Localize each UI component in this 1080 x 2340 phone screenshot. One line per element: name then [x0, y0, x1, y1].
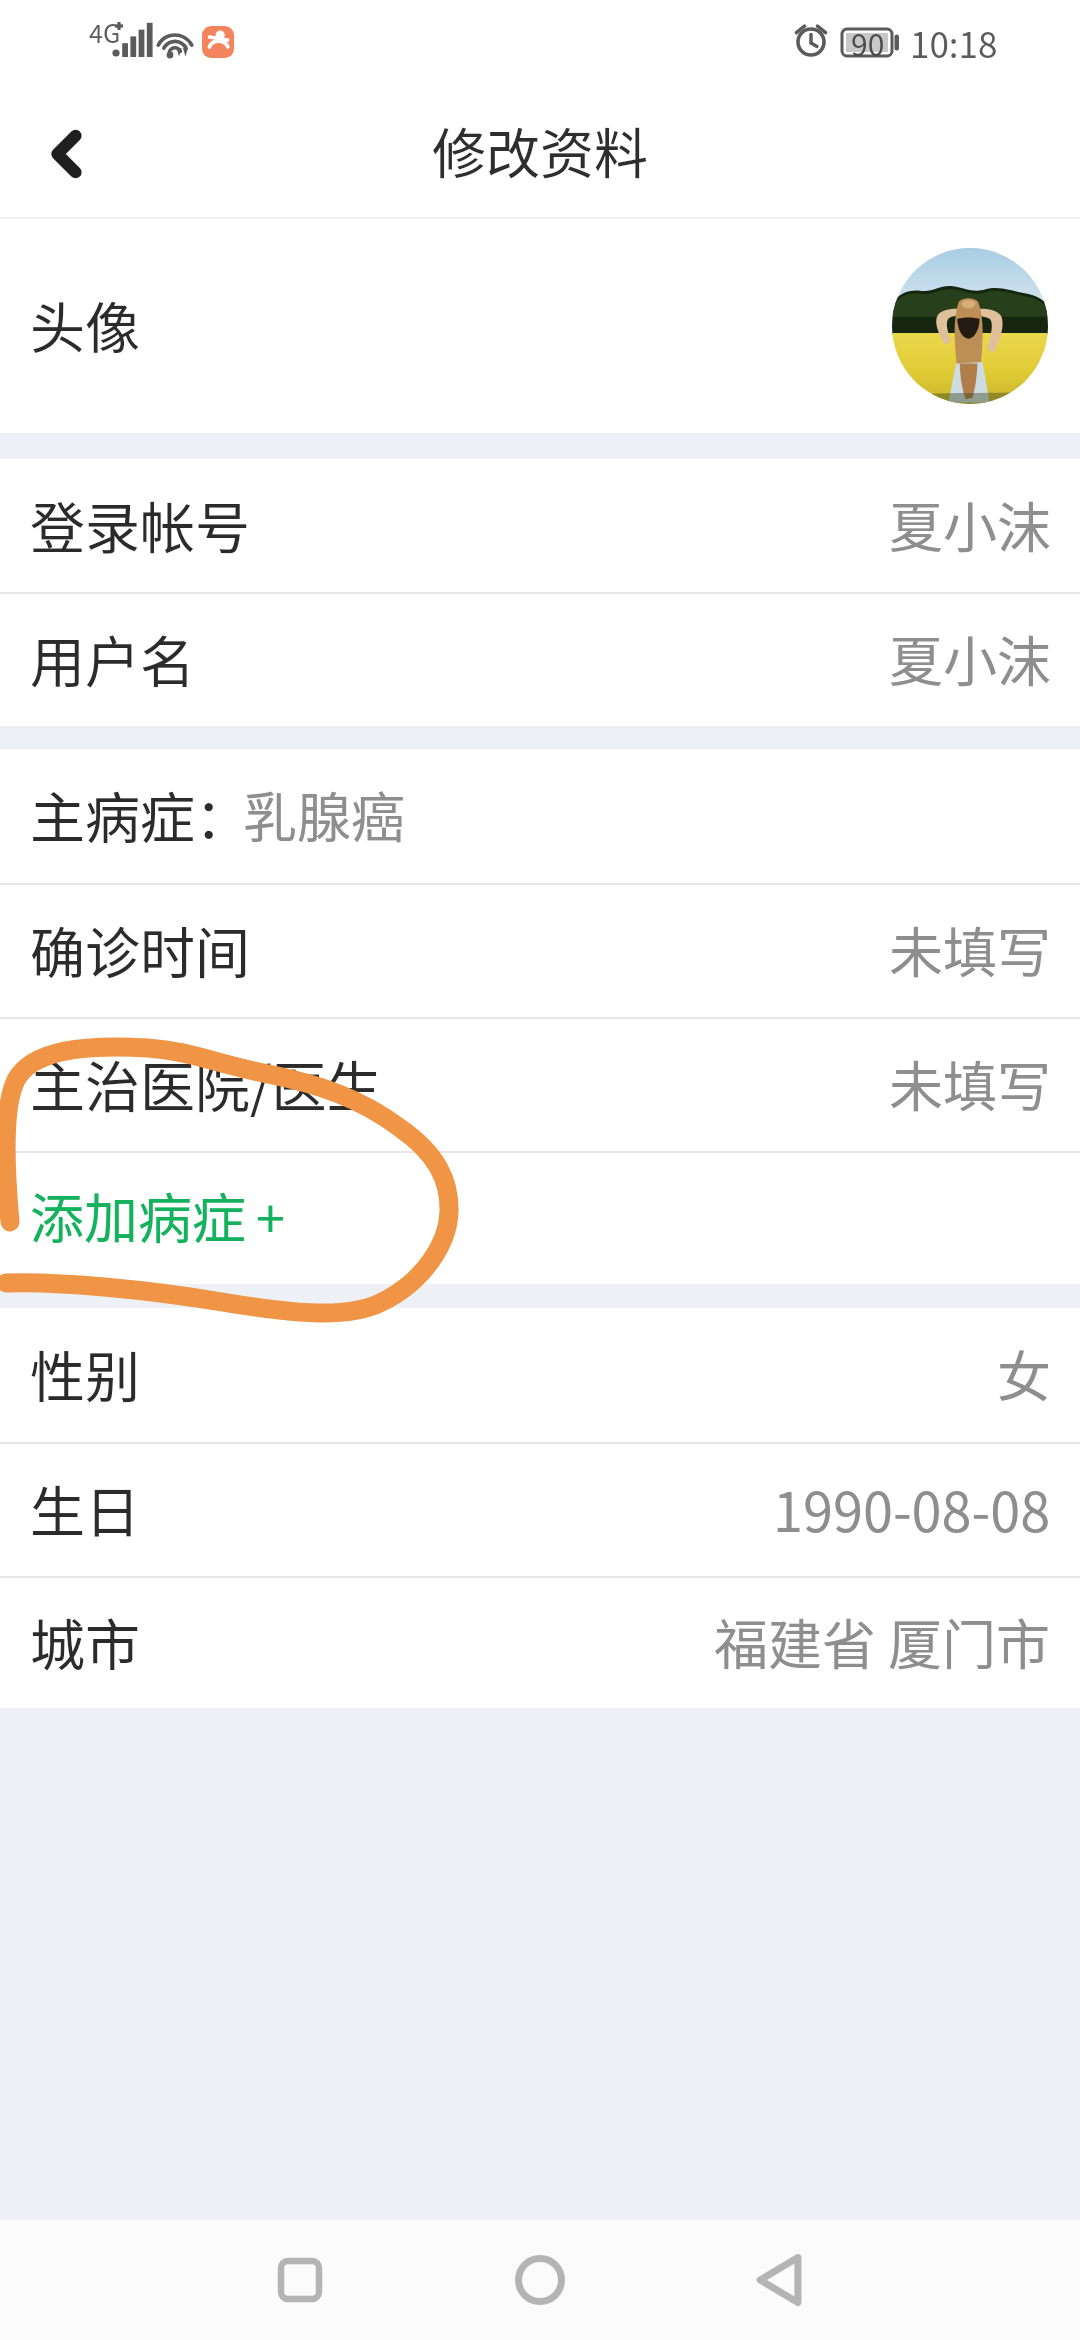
- button[interactable]: Back: [719, 2220, 839, 2340]
- button[interactable]: 主治医院/医生: [0, 1019, 1080, 1151]
- button[interactable]: Recent apps: [240, 2220, 360, 2340]
- staticText: 90: [851, 21, 885, 64]
- staticText: 修改资料: [432, 111, 648, 189]
- button[interactable]: 确诊时间: [0, 885, 1080, 1017]
- staticText: 夏小沫: [889, 485, 1051, 563]
- staticText: 4G: [89, 14, 121, 50]
- staticText: 乳腺癌: [243, 775, 405, 853]
- button[interactable]: 添加病症: [0, 1153, 1080, 1284]
- button[interactable]: 城市: [0, 1578, 1080, 1708]
- staticText: 确诊时间: [30, 909, 251, 989]
- button[interactable]: 登录帐号: [0, 459, 1080, 592]
- staticText: 1990-08-08: [773, 1469, 1051, 1547]
- staticText: 夏小沫: [889, 619, 1051, 697]
- button[interactable]: 生日: [0, 1444, 1080, 1576]
- button[interactable]: 用户名: [0, 594, 1080, 726]
- button[interactable]: 主病症：: [0, 749, 1080, 883]
- button[interactable]: 性别: [0, 1308, 1080, 1442]
- staticText: 10:18: [910, 17, 998, 68]
- staticText: 福建省 厦门市: [714, 1602, 1051, 1680]
- button[interactable]: Back: [0, 90, 130, 217]
- button[interactable]: Home: [480, 2220, 600, 2340]
- staticText: 添加病症: [30, 1176, 246, 1254]
- staticText: 登录帐号: [30, 484, 251, 564]
- staticText: 头像: [30, 284, 141, 364]
- staticText: 未填写: [889, 910, 1051, 988]
- staticText: 女: [997, 1334, 1051, 1412]
- staticText: 生日: [30, 1468, 141, 1548]
- staticText: 主治医院/医生: [30, 1043, 382, 1123]
- staticText: 主病症：: [30, 774, 251, 854]
- staticText: 性别: [30, 1333, 141, 1413]
- staticText: 未填写: [889, 1044, 1051, 1122]
- staticText: 用户名: [30, 618, 196, 698]
- staticText: 城市: [30, 1601, 141, 1681]
- button[interactable]: 头像: [0, 219, 1080, 433]
- staticText: +: [256, 1178, 285, 1253]
